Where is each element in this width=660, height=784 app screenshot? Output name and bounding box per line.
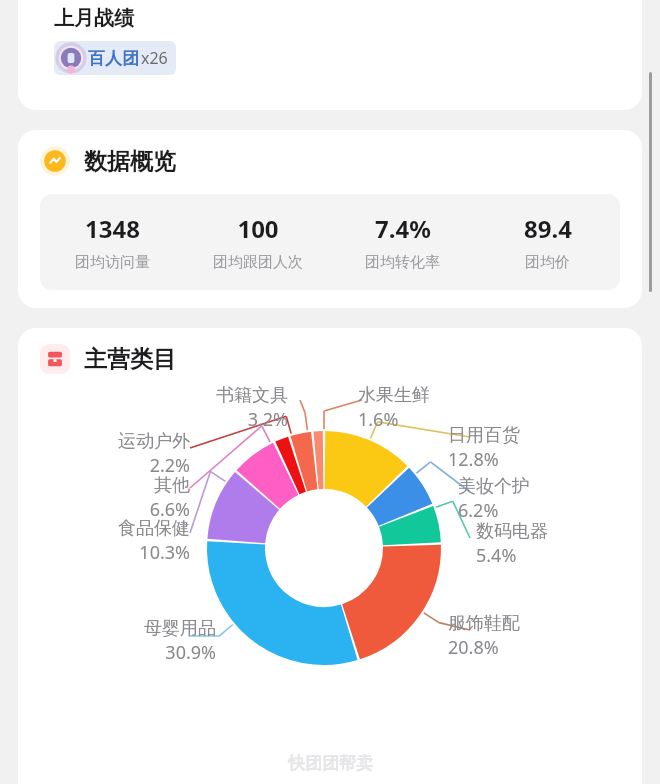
- other: 百人团勋章: [54, 41, 88, 75]
- staticText: 数据概览: [84, 147, 176, 176]
- staticText: 母婴用品: [144, 617, 216, 640]
- staticText: x26: [141, 47, 168, 69]
- staticText: 10.3%: [139, 540, 190, 565]
- staticText: 日用百货: [448, 424, 520, 447]
- staticText: 6.2%: [458, 498, 499, 523]
- staticText: 12.8%: [448, 447, 499, 472]
- button[interactable]: 1348: [40, 194, 185, 290]
- staticText: 团均价: [525, 253, 570, 272]
- staticText: 7.4%: [375, 212, 431, 245]
- staticText: 1348: [85, 212, 140, 245]
- staticText: 美妆个护: [458, 475, 530, 498]
- button[interactable]: 100: [185, 194, 330, 290]
- staticText: 3.2%: [247, 407, 288, 432]
- staticText: 百人团: [88, 48, 139, 69]
- staticText: 团均访问量: [75, 253, 150, 272]
- staticText: 100: [237, 212, 279, 245]
- button[interactable]: 主营类目: [18, 328, 642, 784]
- button[interactable]: 7.4%: [330, 194, 475, 290]
- button[interactable]: 数据概览: [18, 130, 642, 308]
- staticText: 书籍文具: [216, 384, 288, 407]
- button[interactable]: 百人团勋章: [54, 41, 168, 75]
- staticText: 团均转化率: [365, 253, 440, 272]
- staticText: 89.4: [524, 212, 572, 245]
- button[interactable]: 上月战绩: [18, 0, 642, 110]
- staticText: 主营类目: [84, 345, 176, 374]
- staticText: 食品保健: [118, 517, 190, 540]
- staticText: 运动户外: [118, 430, 190, 453]
- staticText: 30.9%: [165, 640, 216, 665]
- staticText: 2.2%: [149, 453, 190, 478]
- staticText: 6.6%: [149, 497, 190, 522]
- staticText: 上月战绩: [54, 6, 134, 31]
- button[interactable]: 89.4: [475, 194, 620, 290]
- staticText: 快团团帮卖: [288, 753, 373, 774]
- staticText: 20.8%: [448, 635, 499, 660]
- staticText: 服饰鞋配: [448, 612, 520, 635]
- staticText: 团均跟团人次: [213, 253, 303, 272]
- staticText: 5.4%: [476, 543, 517, 568]
- staticText: 1.6%: [358, 407, 399, 432]
- staticText: 其他: [154, 474, 190, 497]
- staticText: 数码电器: [476, 520, 548, 543]
- staticText: 水果生鲜: [358, 384, 430, 407]
